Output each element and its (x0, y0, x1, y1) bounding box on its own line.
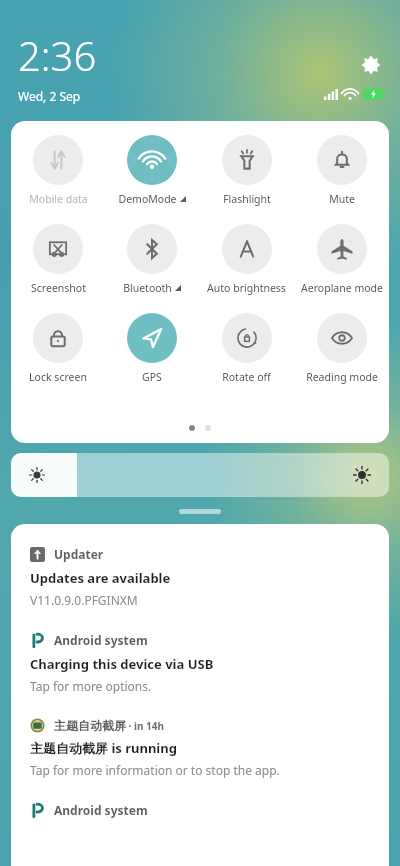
button[interactable]: Reading mode (294, 313, 389, 384)
staticText: Mute (329, 192, 355, 206)
button[interactable]: Updater (30, 546, 373, 562)
button[interactable]: Flashlight (199, 135, 294, 206)
button[interactable]: Aeroplane mode (294, 224, 389, 295)
staticText: Wed, 2 Sep (18, 88, 81, 104)
staticText: Android system (54, 802, 148, 818)
staticText: 主题自动截屏 is running (30, 739, 177, 757)
button[interactable]: Screenshot (11, 224, 105, 295)
staticText: Auto brightness (207, 281, 286, 295)
button[interactable]: Mobile data (11, 135, 105, 206)
staticText: Lock screen (29, 370, 87, 384)
button[interactable]: Rotate off (199, 313, 294, 384)
button[interactable]: Lock screen (11, 313, 105, 384)
staticText: Flashlight (223, 192, 271, 206)
staticText: Bluetooth (123, 281, 172, 295)
staticText: · in 14h (126, 719, 165, 733)
staticText: Tap for more options. (30, 678, 152, 694)
button[interactable]: Bluetooth (105, 224, 199, 295)
staticText: Rotate off (222, 370, 271, 384)
staticText: Mobile data (29, 192, 88, 206)
staticText: GPS (142, 370, 162, 384)
staticText: Charging this device via USB (30, 655, 214, 673)
staticText: Aeroplane mode (301, 281, 383, 295)
button[interactable]: Settings (356, 50, 386, 80)
staticText: Reading mode (306, 370, 378, 384)
staticText: V11.0.9.0.PFGINXM (30, 592, 138, 608)
staticText: Updater (54, 546, 104, 562)
staticText: Screenshot (31, 281, 86, 295)
button[interactable]: GPS (105, 313, 199, 384)
staticText: Android system (54, 632, 148, 648)
button[interactable] (11, 453, 389, 497)
button[interactable]: Android system (30, 632, 373, 648)
staticText: 2:36 (18, 28, 97, 82)
button[interactable]: Auto brightness (199, 224, 294, 295)
button[interactable]: Android system (30, 802, 373, 818)
staticText: 主题自动截屏 (54, 718, 126, 733)
staticText: Tap for more information or to stop the … (30, 762, 280, 778)
staticText: DemoMode (118, 192, 177, 206)
button[interactable]: 主题自动截屏 (30, 718, 373, 733)
button[interactable]: Mute (294, 135, 389, 206)
staticText: Updates are available (30, 569, 171, 587)
button[interactable]: DemoMode (105, 135, 199, 206)
